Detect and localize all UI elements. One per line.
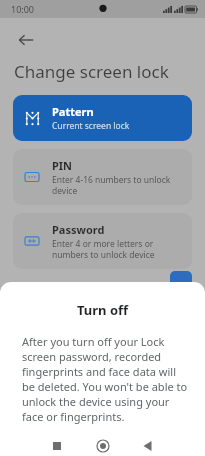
staticText: Turn off	[0, 301, 205, 319]
staticText: Password	[52, 222, 105, 237]
staticText: Current screen lock	[52, 120, 130, 132]
button[interactable]: Pattern	[13, 95, 192, 141]
button[interactable]: PIN	[13, 149, 192, 205]
button[interactable]: Password	[13, 213, 192, 269]
staticText: Pattern	[52, 104, 94, 119]
staticText: PIN	[52, 158, 73, 173]
staticText: Enter 4 or more letters or numbers to un…	[52, 238, 184, 260]
staticText: 10:00	[11, 3, 35, 15]
button[interactable]: Back	[8, 22, 44, 58]
button[interactable]: Home	[90, 436, 116, 456]
button[interactable]: Back	[135, 436, 161, 456]
staticText: Enter 4-16 numbers to unlock device	[52, 174, 184, 196]
button[interactable]: Recents	[44, 436, 70, 456]
staticText: After you turn off your Lock screen pass…	[22, 334, 190, 424]
staticText: Change screen lock	[14, 60, 169, 83]
